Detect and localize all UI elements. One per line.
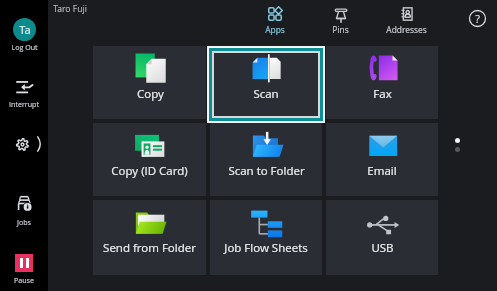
staticText: Taro Fuji bbox=[53, 3, 87, 15]
button[interactable]: Interrupt bbox=[2, 76, 46, 112]
staticText: Jobs bbox=[17, 217, 31, 227]
button[interactable]: Help bbox=[469, 10, 486, 27]
staticText: ? bbox=[475, 11, 480, 26]
button[interactable]: Pins bbox=[308, 7, 372, 37]
staticText: Send from Folder bbox=[103, 240, 196, 256]
other: Interrupt bbox=[16, 81, 33, 93]
button[interactable]: Scan bbox=[210, 46, 322, 119]
button[interactable]: Pause bbox=[2, 254, 46, 290]
staticText: USB bbox=[371, 240, 394, 256]
other: Jobs bbox=[15, 195, 33, 212]
button[interactable]: Jobs bbox=[2, 195, 46, 231]
button[interactable]: Send from Folder bbox=[93, 200, 206, 275]
button[interactable]: Scan to Folder bbox=[210, 123, 322, 196]
button[interactable]: Ta bbox=[2, 18, 46, 58]
button[interactable]: Copy (ID Card) bbox=[93, 123, 206, 196]
staticText: Apps bbox=[265, 24, 285, 35]
button[interactable]: Fax bbox=[326, 46, 438, 119]
staticText: Email bbox=[367, 163, 397, 179]
button[interactable]: USB bbox=[326, 200, 438, 275]
staticText: Copy (ID Card) bbox=[111, 163, 188, 179]
button[interactable]: Apps bbox=[243, 7, 307, 37]
staticText: Pause bbox=[14, 275, 34, 285]
staticText: Fax bbox=[373, 86, 392, 102]
staticText: Pins bbox=[332, 24, 349, 35]
staticText: Ta bbox=[19, 22, 31, 37]
button[interactable]: Job Flow Sheets bbox=[210, 200, 322, 275]
button[interactable]: Copy bbox=[93, 46, 206, 119]
button[interactable]: Settings bbox=[16, 138, 29, 151]
staticText: Scan to Folder bbox=[228, 163, 305, 179]
staticText: Copy bbox=[137, 86, 164, 102]
button[interactable]: Addresses bbox=[374, 7, 438, 37]
staticText: Interrupt bbox=[2, 99, 46, 109]
staticText: Log Out bbox=[11, 42, 38, 52]
button[interactable]: Email bbox=[326, 123, 438, 196]
staticText: Job Flow Sheets bbox=[224, 240, 308, 256]
staticText: Addresses bbox=[386, 24, 427, 35]
staticText: Scan bbox=[253, 86, 279, 102]
